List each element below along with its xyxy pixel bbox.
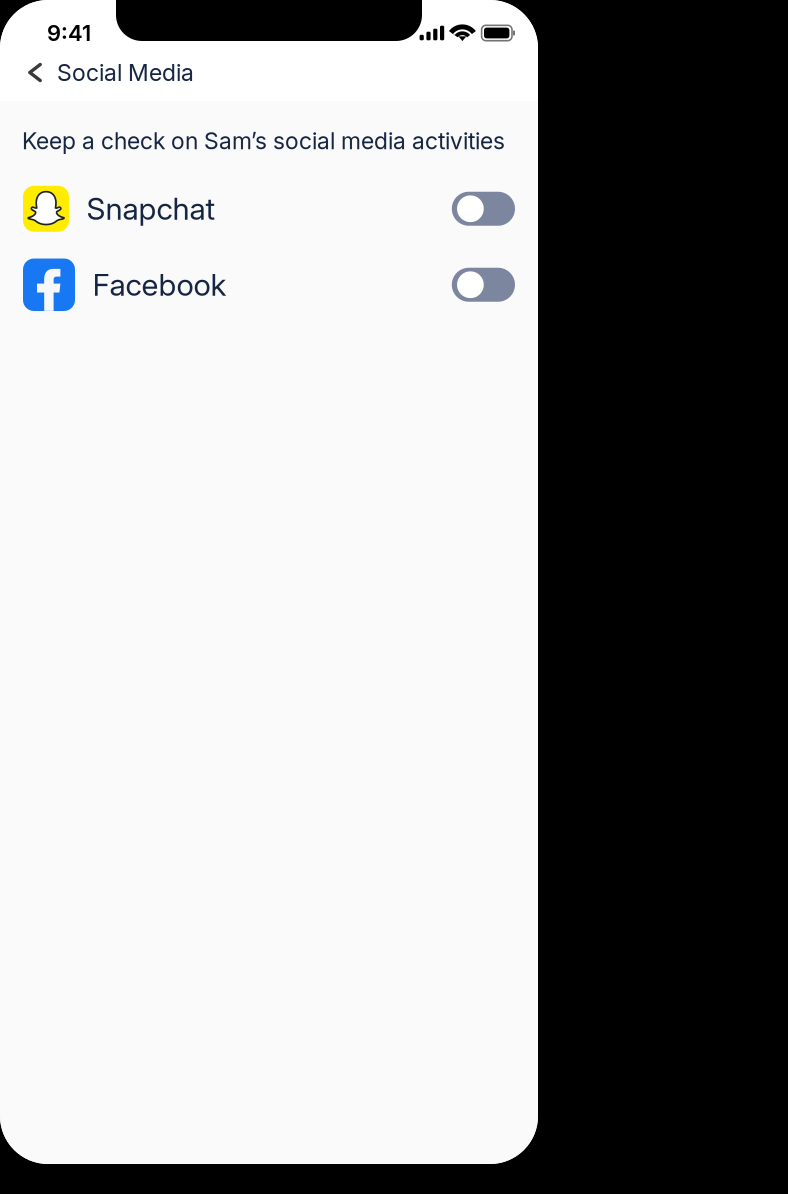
staticText: Keep a check on Sam’s social media activ… (22, 127, 505, 155)
button[interactable]: Back to Social Media (0, 44, 204, 101)
staticText: Facebook (92, 267, 226, 303)
staticText: Social Media (57, 58, 194, 86)
staticText: Snapchat (86, 191, 215, 227)
button[interactable]: Facebook (0, 258, 538, 312)
staticText: 9:41 (47, 20, 91, 46)
button[interactable]: Snapchat (0, 182, 538, 236)
